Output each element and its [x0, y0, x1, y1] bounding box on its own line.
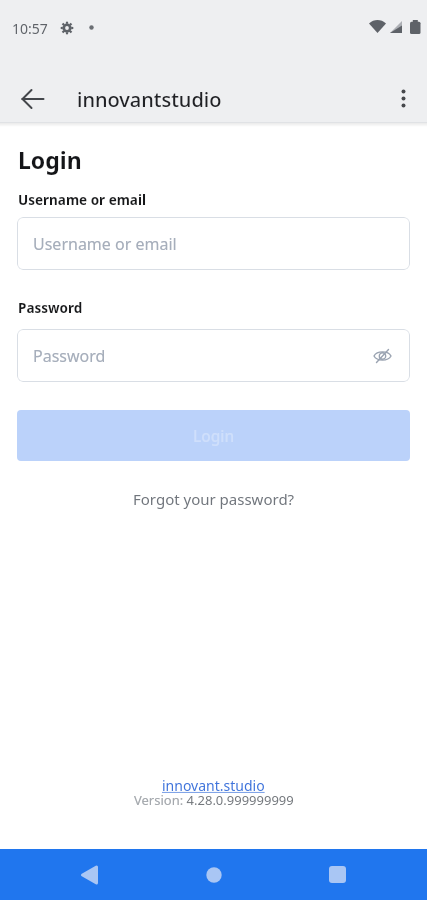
button[interactable]	[65, 850, 114, 899]
button[interactable]	[313, 850, 362, 899]
button[interactable]: Forgot your password?	[133, 489, 295, 509]
staticText: Version: 4.28.0.999999999	[134, 791, 294, 809]
button[interactable]	[379, 74, 427, 122]
staticText: Username or email	[18, 191, 147, 209]
button[interactable]	[189, 850, 238, 899]
staticText: 10:57	[12, 19, 48, 38]
button[interactable]: Password	[17, 329, 410, 382]
button[interactable]: Username or email	[17, 217, 410, 270]
staticText: Password	[18, 299, 83, 317]
staticText: innovantstudio	[77, 86, 222, 113]
button[interactable]	[9, 75, 57, 123]
staticText: Username or email	[33, 233, 177, 255]
staticText: Login	[18, 144, 82, 175]
staticText: Password	[33, 345, 106, 367]
staticText: Login	[193, 425, 235, 446]
button[interactable]: innovant.studio	[162, 776, 265, 795]
